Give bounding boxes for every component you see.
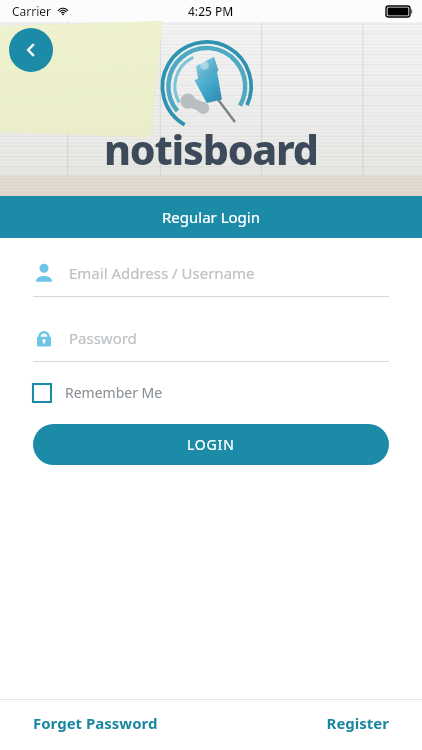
button[interactable]: Back	[9, 28, 53, 72]
staticText: Register	[326, 713, 389, 733]
button[interactable]: Regular Login	[0, 196, 422, 238]
button[interactable]: Remember Me	[33, 383, 163, 402]
staticText: Carrier	[12, 3, 52, 19]
button[interactable]: Forget Password	[33, 700, 326, 746]
staticText: Remember Me	[65, 383, 163, 402]
staticText: 4:25 PM	[188, 3, 234, 19]
staticText: LOGIN	[187, 435, 235, 454]
staticText: Email Address / Username	[69, 263, 255, 283]
button[interactable]: Register	[326, 700, 389, 746]
staticText: Regular Login	[162, 207, 260, 227]
staticText: Forget Password	[33, 713, 158, 733]
button[interactable]: Email Address / Username	[33, 262, 389, 297]
button[interactable]: Password	[33, 327, 389, 362]
staticText: notisboard	[104, 121, 318, 177]
staticText: Password	[69, 328, 137, 348]
button[interactable]: LOGIN	[33, 424, 389, 465]
